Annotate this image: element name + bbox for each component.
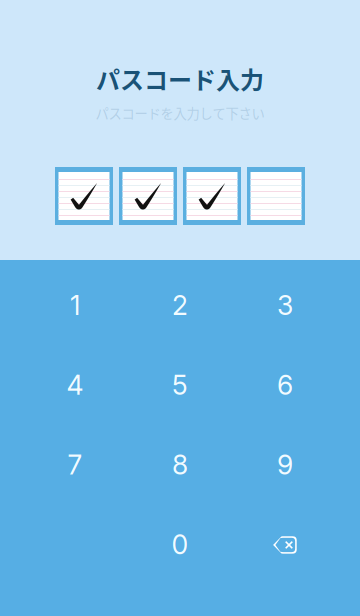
staticText: 9: [277, 449, 293, 481]
staticText: パスコードを入力して下さい: [95, 103, 264, 123]
button[interactable]: 0: [127, 505, 232, 584]
button[interactable]: 8: [127, 425, 232, 505]
button[interactable]: 2: [127, 265, 232, 345]
staticText: 0: [171, 528, 188, 561]
button[interactable]: Delete: [232, 505, 337, 584]
button[interactable]: 5: [127, 345, 232, 425]
staticText: 1: [70, 289, 80, 321]
staticText: パスコード入力: [96, 61, 264, 96]
staticText: 4: [66, 369, 83, 401]
staticText: 5: [172, 369, 188, 401]
staticText: 6: [277, 369, 293, 401]
button[interactable]: 6: [232, 345, 337, 425]
button[interactable]: 4: [22, 345, 127, 425]
staticText: 3: [277, 289, 293, 321]
button[interactable]: 1: [22, 265, 127, 345]
button[interactable]: 7: [22, 425, 127, 505]
staticText: 8: [172, 449, 188, 481]
staticText: 7: [67, 449, 82, 481]
button[interactable]: 9: [232, 425, 337, 505]
staticText: 2: [172, 289, 188, 321]
button[interactable]: 3: [232, 265, 337, 345]
